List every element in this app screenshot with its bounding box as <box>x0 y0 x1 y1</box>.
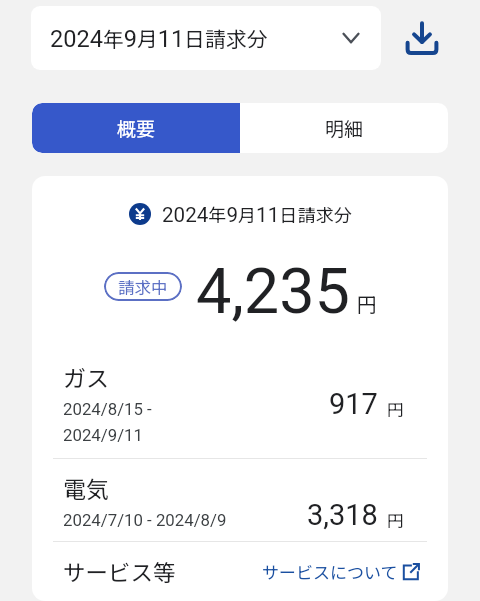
button[interactable]: サービスについて <box>262 559 420 584</box>
staticText: 円 <box>387 397 404 421</box>
staticText: 概要 <box>117 114 156 142</box>
staticText: 2024/9/11 <box>63 425 143 445</box>
staticText: サービスについて <box>262 559 398 584</box>
button[interactable]: 明細 <box>240 103 448 153</box>
button[interactable]: Download <box>398 14 446 62</box>
staticText: 円 <box>357 289 377 318</box>
button[interactable]: ガス <box>32 350 448 458</box>
button[interactable]: 2024年9月11日請求分 <box>31 6 381 70</box>
staticText: 請求中 <box>118 275 168 299</box>
staticText: 4,235 <box>196 255 351 329</box>
staticText: 2024年9月11日請求分 <box>50 23 268 53</box>
staticText: 917 <box>329 387 378 421</box>
staticText: 3,318 <box>307 498 378 532</box>
staticText: サービス等 <box>63 555 176 588</box>
button[interactable]: 請求中 <box>118 272 168 301</box>
staticText: ガス <box>63 360 109 393</box>
staticText: 円 <box>387 508 404 532</box>
staticText: 明細 <box>325 114 364 142</box>
staticText: 電気 <box>63 471 109 504</box>
staticText: 2024/8/15 - <box>63 399 152 419</box>
button[interactable]: 電気 <box>32 459 448 541</box>
button[interactable]: 概要 <box>32 103 240 153</box>
staticText: 2024/7/10 - 2024/8/9 <box>63 510 227 530</box>
staticText: 2024年9月11日請求分 <box>162 201 352 227</box>
